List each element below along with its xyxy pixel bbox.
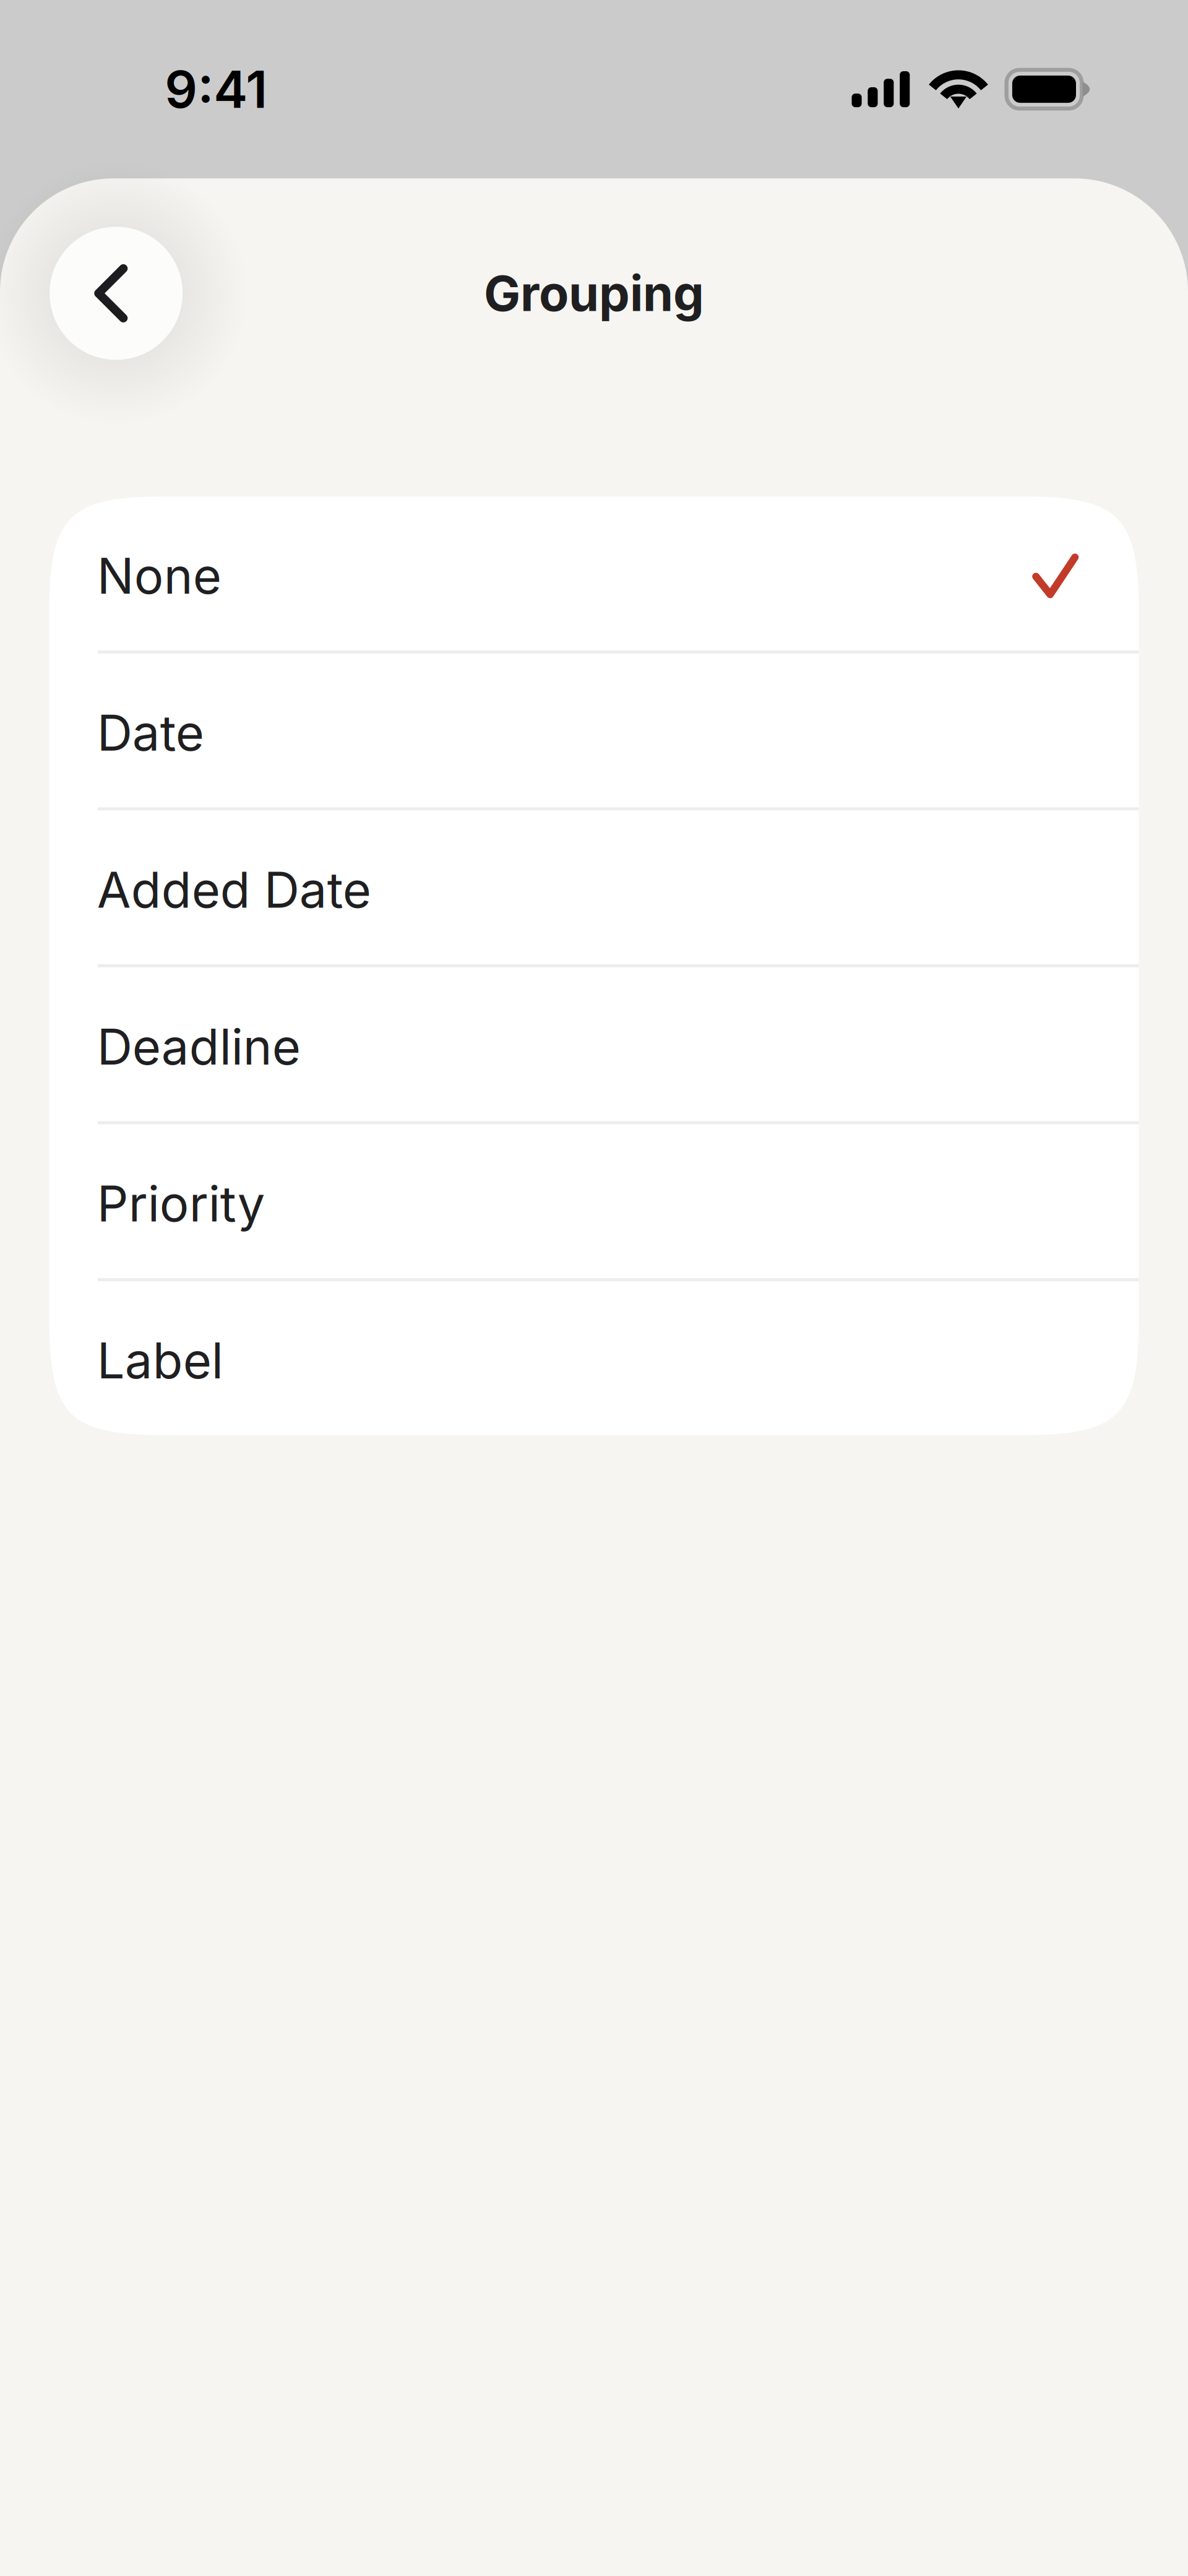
button[interactable]: Label [49,1281,1139,1435]
button[interactable]: Deadline [49,967,1139,1121]
button[interactable]: Added Date [49,810,1139,964]
staticText: Grouping [484,264,704,323]
staticText: Label [97,1331,223,1390]
staticText: None [97,546,221,606]
staticText: 9:41 [165,58,267,120]
button[interactable]: Back [48,227,184,360]
staticText: Date [97,703,204,763]
button[interactable]: Date [49,653,1139,807]
staticText: Added Date [97,860,371,919]
staticText: Priority [97,1174,265,1233]
button[interactable]: Priority [49,1124,1139,1278]
staticText: Deadline [97,1017,301,1076]
button[interactable]: None [49,497,1139,650]
